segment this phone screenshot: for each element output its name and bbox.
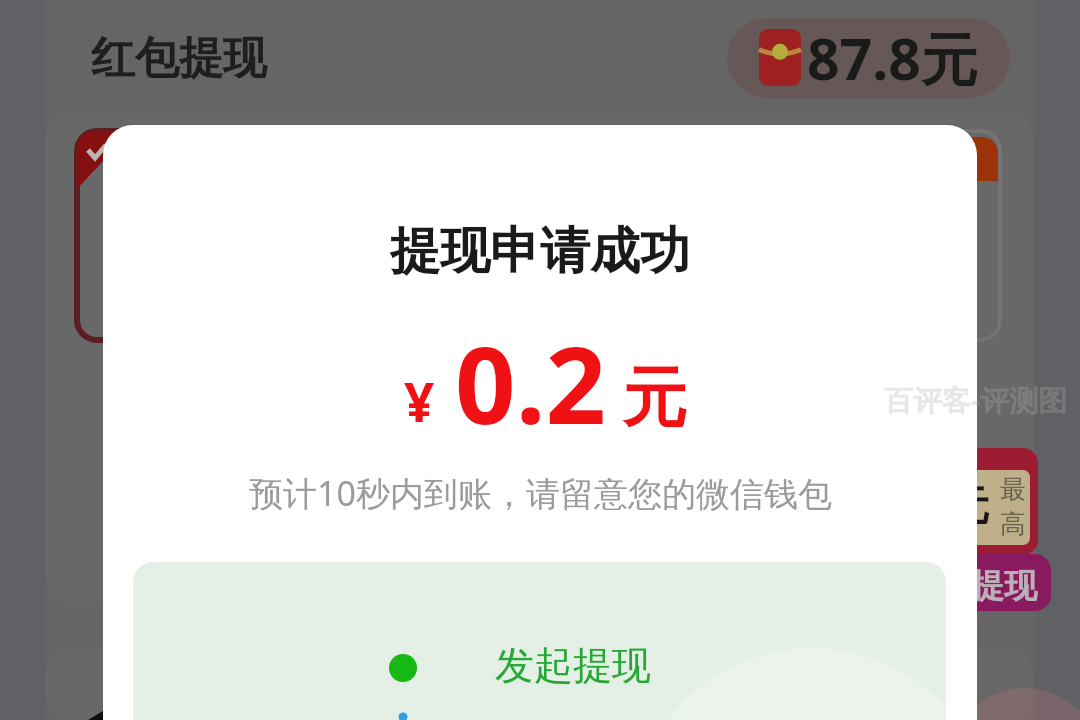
staticText: 元: [949, 480, 989, 530]
staticText: 元: [622, 357, 687, 439]
button[interactable]: 提现: [885, 554, 1051, 611]
staticText: 最: [1000, 473, 1026, 506]
staticText: 0.2: [455, 311, 607, 455]
staticText: 提现申请成功: [390, 220, 690, 283]
staticText: 87.8元: [807, 19, 978, 97]
staticText: ¥: [404, 365, 435, 437]
button[interactable]: 提现金额选项 0.2 元，已选中: [77, 131, 347, 340]
button[interactable]: 提现金额选项: [735, 131, 1000, 340]
staticText: 高: [1000, 508, 1026, 541]
staticText: 百评客-评测图: [884, 380, 1068, 420]
button[interactable]: 87.8元: [727, 18, 1010, 98]
staticText: 提现: [971, 565, 1037, 607]
button[interactable]: 发起提现: [133, 562, 946, 720]
staticText: 发起提现: [495, 641, 651, 690]
staticText: 预计10秒内到账，请留意您的微信钱包: [249, 470, 832, 516]
staticText: 红包提现: [91, 31, 267, 86]
